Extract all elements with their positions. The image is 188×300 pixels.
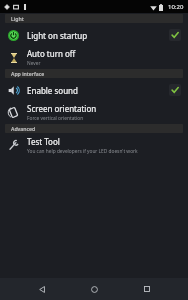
button[interactable]: Recents xyxy=(136,278,158,300)
staticText: App interface xyxy=(11,70,45,77)
button[interactable]: Home xyxy=(83,278,105,300)
button[interactable]: Back xyxy=(31,278,53,300)
staticText: 10:20 xyxy=(168,3,184,11)
staticText: Force vertical orientation xyxy=(27,115,84,122)
button[interactable]: Test Tool xyxy=(0,134,188,156)
staticText: Enable sound xyxy=(27,85,78,96)
staticText: You can help developers if your LED does… xyxy=(27,148,138,155)
button[interactable]: Light on startup xyxy=(169,29,181,41)
button[interactable]: Enable sound xyxy=(0,79,188,101)
staticText: Light on startup xyxy=(27,30,88,41)
staticText: Never xyxy=(27,60,41,67)
staticText: Advanced xyxy=(11,125,36,132)
button[interactable]: Screen orientation xyxy=(0,101,188,123)
staticText: Test Tool xyxy=(27,136,60,147)
button[interactable]: Enable sound xyxy=(169,84,181,96)
button[interactable]: Auto turn off xyxy=(0,46,188,68)
staticText: Auto turn off xyxy=(27,48,76,59)
button[interactable]: Light on startup xyxy=(0,24,188,46)
staticText: Screen orientation xyxy=(27,103,97,114)
staticText: Light xyxy=(11,15,24,22)
